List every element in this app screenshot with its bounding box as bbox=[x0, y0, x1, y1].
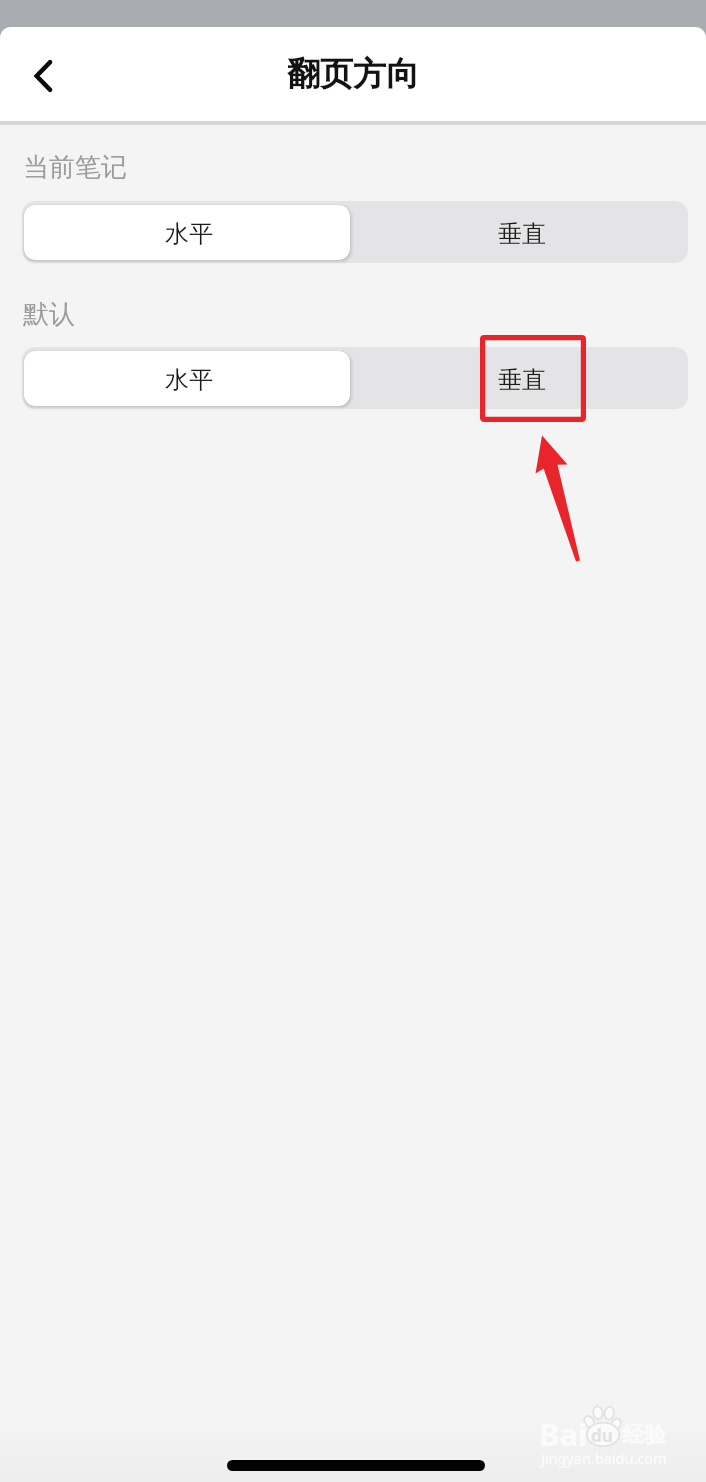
staticText: Bai bbox=[539, 1413, 588, 1455]
button[interactable]: 水平 bbox=[22, 201, 355, 263]
button[interactable]: Back bbox=[15, 47, 73, 105]
staticText: 默认 bbox=[23, 298, 75, 331]
button[interactable]: 垂直 bbox=[355, 201, 688, 263]
button[interactable]: 水平 bbox=[22, 347, 355, 409]
button[interactable]: 垂直 bbox=[355, 347, 688, 409]
staticText: 翻页方向 bbox=[287, 53, 419, 95]
staticText: 垂直 bbox=[498, 365, 546, 395]
staticText: jingyan.baidu.com bbox=[541, 1448, 667, 1468]
staticText: 经验 bbox=[622, 1421, 666, 1449]
staticText: 当前笔记 bbox=[23, 151, 127, 184]
staticText: du bbox=[591, 1424, 613, 1447]
staticText: 水平 bbox=[165, 365, 213, 395]
staticText: 垂直 bbox=[498, 219, 546, 249]
staticText: 水平 bbox=[165, 219, 213, 249]
